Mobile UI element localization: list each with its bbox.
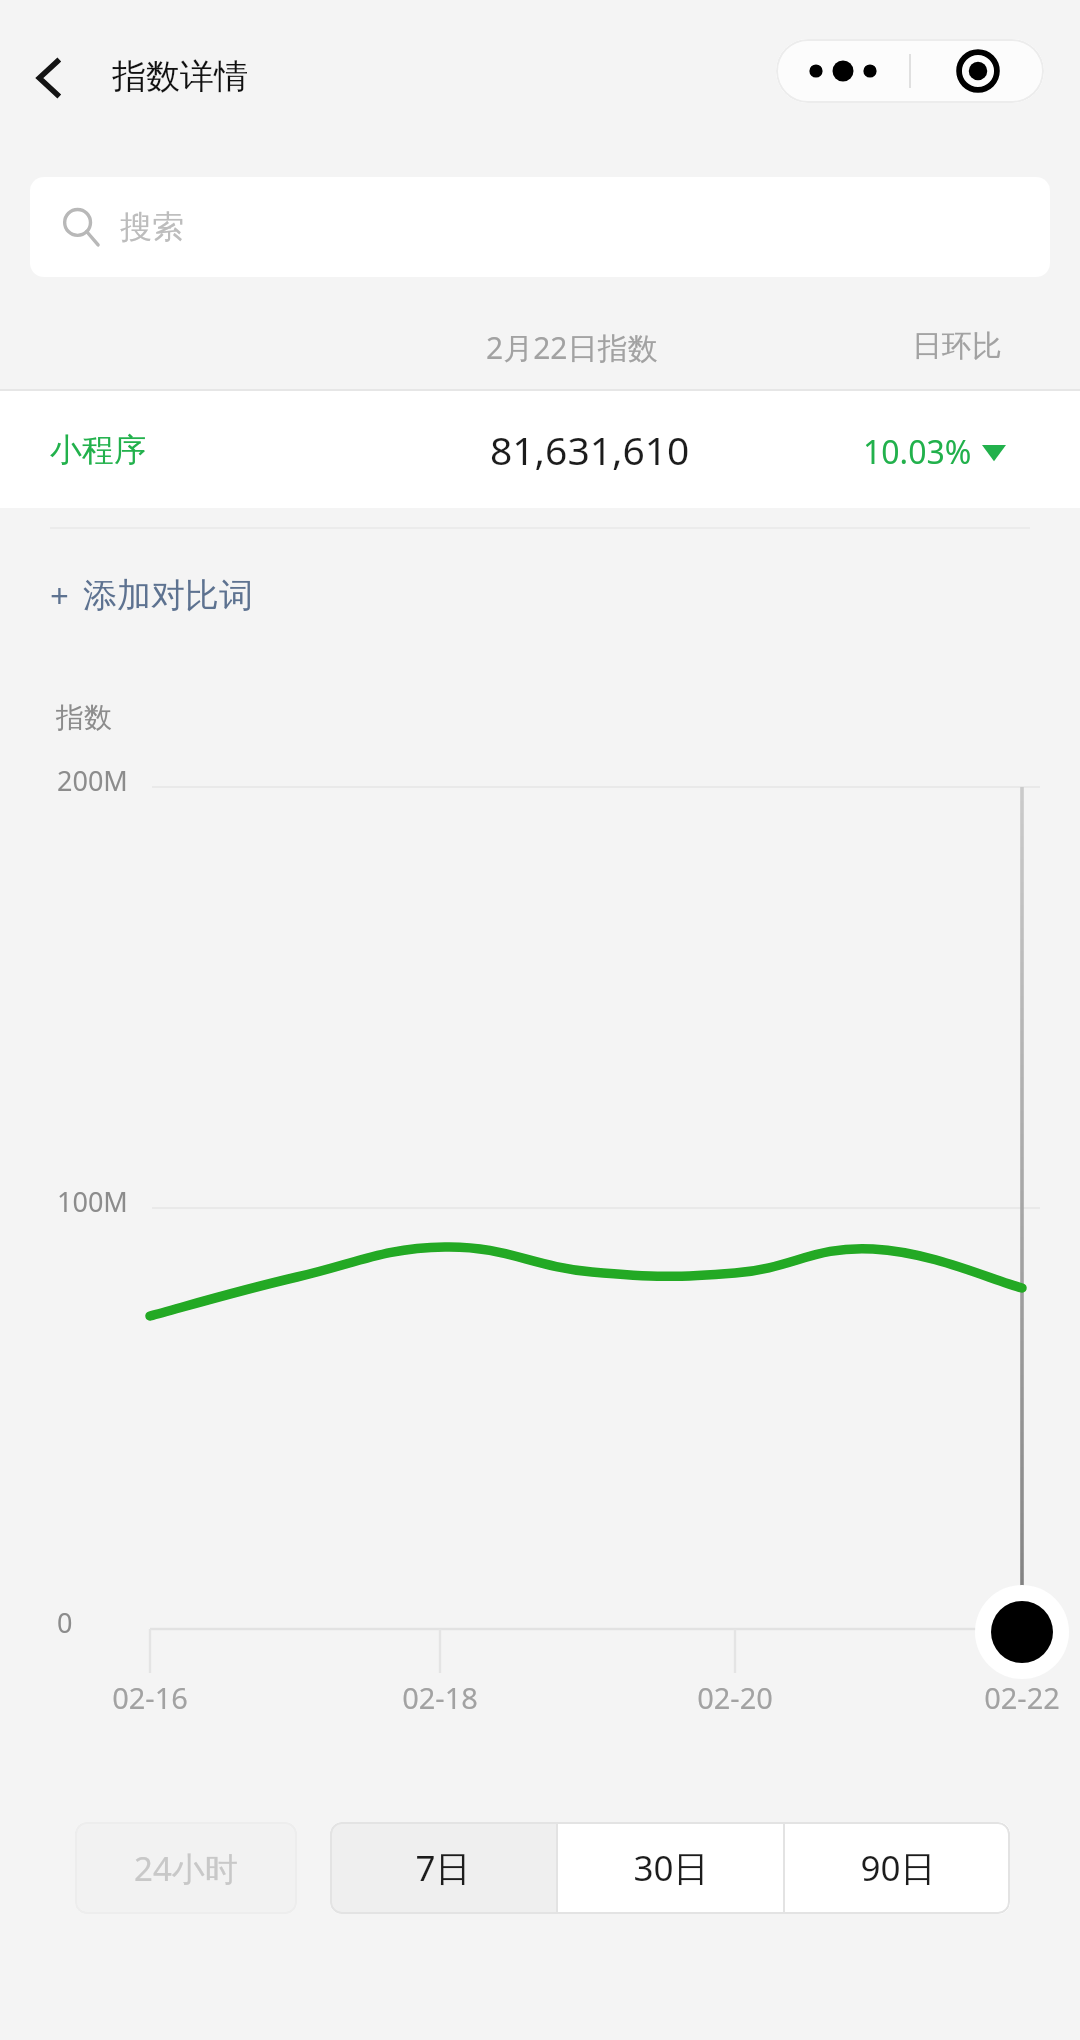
staticText: 02-18: [402, 1678, 478, 1717]
staticText: 81,631,610: [490, 423, 690, 476]
staticText: 添加对比词: [83, 574, 253, 617]
button[interactable]: Back: [14, 43, 84, 113]
button[interactable]: More options: [776, 39, 909, 103]
staticText: 90日: [860, 1844, 936, 1892]
button[interactable]: 7日: [330, 1822, 556, 1914]
staticText: 2月22日指数: [486, 327, 658, 368]
staticText: 搜索: [120, 207, 184, 247]
staticText: 02-22: [984, 1678, 1060, 1717]
staticText: 日环比: [912, 327, 1002, 365]
staticText: 小程序: [50, 430, 146, 470]
button[interactable]: 90日: [785, 1822, 1010, 1914]
staticText: 30日: [633, 1844, 709, 1892]
staticText: 100M: [57, 1183, 128, 1220]
button[interactable]: 搜索: [30, 177, 1050, 277]
button[interactable]: +: [50, 556, 253, 634]
staticText: 0: [57, 1604, 73, 1641]
staticText: 10.03%: [863, 430, 972, 474]
staticText: 7日: [415, 1844, 471, 1892]
staticText: 02-20: [697, 1678, 773, 1717]
button[interactable]: Close mini program: [911, 39, 1044, 103]
staticText: 指数: [56, 700, 112, 735]
staticText: 200M: [57, 762, 128, 799]
staticText: 24小时: [134, 1846, 238, 1891]
staticText: +: [50, 573, 69, 618]
button[interactable]: 30日: [558, 1822, 783, 1914]
button[interactable]: 小程序: [0, 391, 1080, 508]
staticText: 02-16: [112, 1678, 188, 1717]
staticText: 指数详情: [112, 55, 248, 98]
button[interactable]: 24小时: [75, 1822, 297, 1914]
